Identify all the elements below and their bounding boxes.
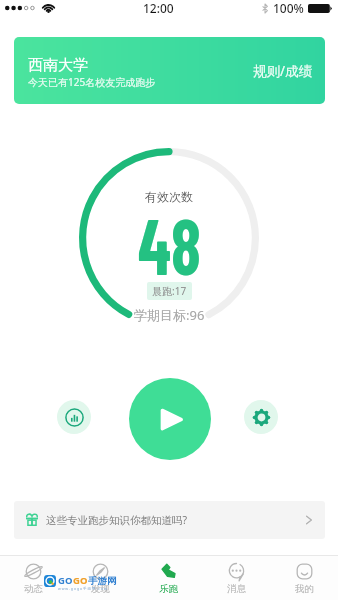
staticText: GO	[73, 574, 88, 587]
staticText: 48	[138, 196, 201, 291]
button[interactable]: 这些专业跑步知识你都知道吗?	[14, 501, 325, 539]
staticText: 这些专业跑步知识你都知道吗?	[46, 513, 188, 527]
button[interactable]: 我的	[270, 563, 338, 595]
button[interactable]: 乐跑	[134, 563, 202, 595]
button[interactable]: 西南大学	[14, 37, 325, 104]
staticText: 消息	[227, 583, 246, 595]
staticText: 规则/成绩	[253, 62, 313, 80]
staticText: w w w . g o g o 手 游 网 . c o m	[58, 586, 107, 591]
staticText: 乐跑	[159, 583, 178, 595]
staticText: 学期目标:96	[134, 306, 205, 324]
button[interactable]: Start run	[129, 378, 211, 460]
staticText: GO	[58, 574, 73, 587]
button[interactable]: 动态	[0, 563, 67, 595]
button[interactable]: 消息	[202, 563, 270, 595]
button[interactable]: 发现	[67, 563, 134, 595]
staticText: 手游网	[88, 575, 117, 587]
staticText: 100%	[273, 0, 304, 16]
staticText: 12:00	[143, 0, 174, 16]
button[interactable]: Statistics	[57, 400, 91, 434]
staticText: 有效次数	[145, 189, 193, 204]
staticText: 发现	[91, 583, 110, 595]
staticText: 西南大学	[28, 56, 88, 75]
button[interactable]: Settings	[244, 400, 278, 434]
staticText: 我的	[295, 583, 314, 595]
staticText: 今天已有125名校友完成跑步	[28, 75, 156, 89]
staticText: 动态	[24, 583, 43, 595]
staticText: 晨跑:17	[152, 284, 187, 298]
